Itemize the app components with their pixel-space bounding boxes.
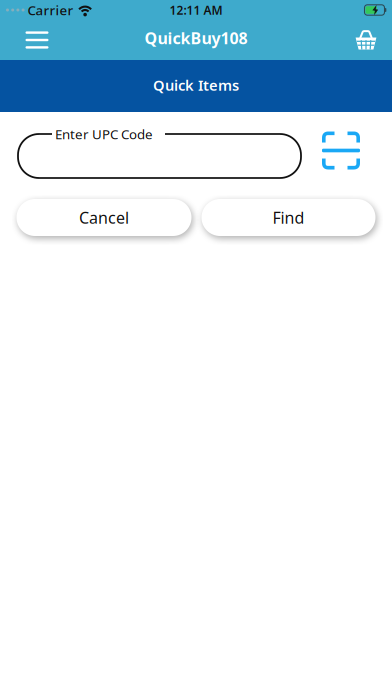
button[interactable]: Scan barcode (322, 131, 360, 169)
button[interactable]: Find (201, 199, 375, 236)
staticText: 12:11 AM (169, 2, 222, 18)
button[interactable]: Cancel (16, 199, 191, 236)
button[interactable]: Cart (344, 20, 388, 60)
staticText: Quick Items (153, 75, 239, 95)
staticText: Enter UPC Code (55, 125, 153, 143)
staticText: Cancel (79, 207, 129, 228)
staticText: Carrier (28, 1, 74, 19)
button[interactable]: Menu (15, 20, 59, 60)
staticText: Find (272, 207, 304, 228)
staticText: QuickBuy108 (144, 27, 247, 49)
button[interactable]: Enter UPC Code (18, 123, 301, 178)
